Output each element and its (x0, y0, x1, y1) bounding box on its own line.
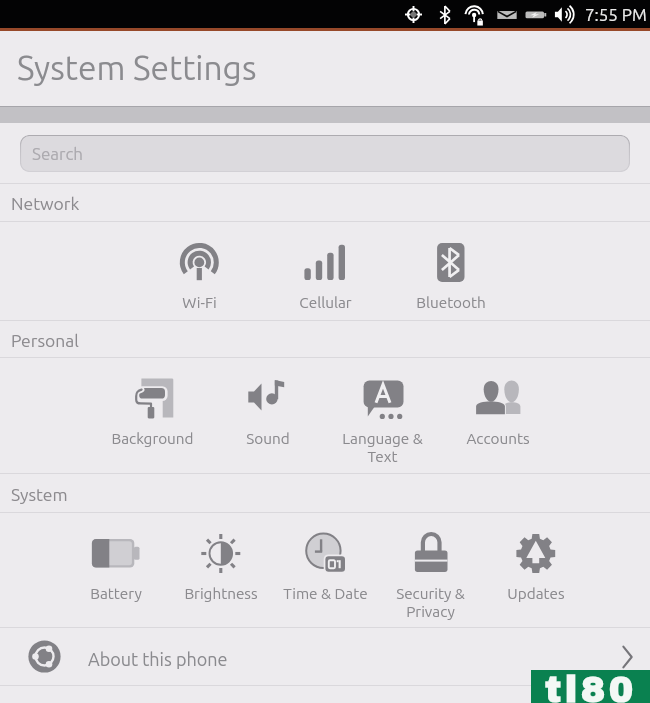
staticText: Sound (246, 430, 290, 447)
staticText: System Settings (17, 49, 257, 87)
staticText: Bluetooth (416, 294, 486, 311)
staticText: Accounts (466, 430, 530, 447)
staticText: Battery (90, 585, 142, 602)
staticText: tl80 (545, 670, 637, 703)
button[interactable]: Search (20, 135, 630, 172)
button[interactable]: Security & Privacy (378, 513, 483, 627)
button[interactable]: Updates (483, 513, 588, 610)
staticText: Language & Text (342, 430, 423, 464)
staticText: Security & Privacy (396, 585, 465, 619)
button[interactable]: Bluetooth (388, 222, 514, 320)
button[interactable]: Time & Date (273, 513, 378, 610)
staticText: Time & Date (283, 585, 368, 602)
staticText: Search (32, 144, 84, 163)
staticText: Updates (507, 585, 565, 602)
staticText: System (11, 485, 68, 505)
button[interactable]: Background (95, 358, 210, 456)
button[interactable]: Brightness (168, 513, 273, 610)
button[interactable]: Cellular (262, 222, 388, 320)
staticText: Network (11, 194, 80, 214)
other: Open about this phone (614, 644, 640, 670)
button[interactable]: Sound (210, 358, 325, 456)
button[interactable]: Battery (63, 513, 168, 610)
button[interactable]: Wi-Fi (136, 222, 262, 320)
staticText: About this phone (88, 649, 228, 669)
staticText: Personal (11, 331, 79, 351)
staticText: Cellular (299, 294, 352, 311)
button[interactable]: Language & Text (325, 358, 440, 473)
staticText: Background (111, 430, 194, 447)
button[interactable]: Accounts (440, 358, 555, 456)
staticText: 7:55 PM (585, 5, 647, 24)
button[interactable]: About this phone (0, 628, 650, 685)
staticText: Brightness (184, 585, 258, 602)
staticText: Wi-Fi (182, 294, 217, 311)
